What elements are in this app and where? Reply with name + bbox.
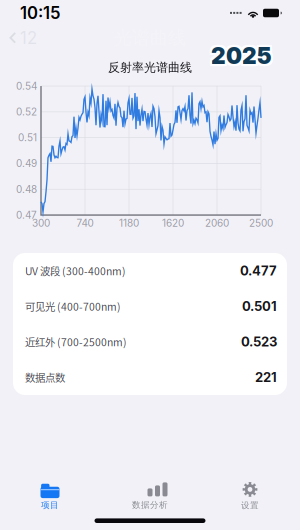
staticText: UV 波段 (300-400nm) <box>25 263 126 278</box>
staticText: 0.48 <box>16 183 37 195</box>
staticText: 221 <box>255 369 277 385</box>
button[interactable]: 12 <box>0 23 46 53</box>
staticText: 1620 <box>162 217 184 229</box>
staticText: 0.477 <box>240 263 277 279</box>
staticText: 近红外 (700-2500nm) <box>25 334 127 349</box>
staticText: 2025 <box>209 40 270 67</box>
staticText: 0.523 <box>241 334 277 350</box>
staticText: 2025 <box>213 40 274 67</box>
staticText: 300 <box>32 217 50 229</box>
button[interactable]: 设置 <box>200 475 300 517</box>
staticText: 0.501 <box>242 298 277 314</box>
staticText: 项目 <box>41 500 59 511</box>
staticText: 0.54 <box>16 80 37 92</box>
staticText: 数据点数 <box>25 370 65 385</box>
staticText: 设置 <box>241 500 259 511</box>
staticText: 740 <box>76 217 93 229</box>
staticText: 2025 <box>211 42 272 69</box>
staticText: 2500 <box>249 217 273 229</box>
staticText: 0.52 <box>16 106 37 118</box>
staticText: 2025 <box>213 42 274 69</box>
staticText: 数据分析 <box>132 500 168 510</box>
button[interactable]: 项目 <box>0 475 100 517</box>
staticText: 反射率光谱曲线 <box>108 60 192 75</box>
staticText: 2025 <box>211 44 272 72</box>
staticText: 0.47 <box>16 209 37 221</box>
staticText: 2025 <box>211 40 272 67</box>
staticText: 1180 <box>119 217 139 229</box>
button[interactable]: 数据分析 <box>100 475 200 517</box>
staticText: 0.51 <box>18 132 37 144</box>
staticText: 可见光 (400-700nm) <box>25 299 121 314</box>
staticText: 12 <box>20 28 37 48</box>
staticText: 2060 <box>205 217 229 229</box>
staticText: 10:15 <box>20 3 60 23</box>
staticText: 2025 <box>209 42 270 69</box>
staticText: 2025 <box>209 44 270 71</box>
staticText: 2025 <box>213 44 274 71</box>
staticText: 0.49 <box>16 157 37 169</box>
